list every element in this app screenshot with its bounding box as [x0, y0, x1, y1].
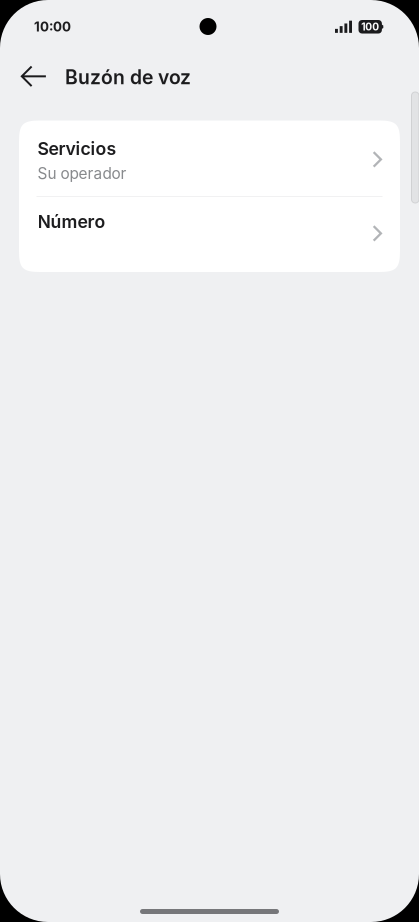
- staticText: Buzón de voz: [65, 65, 191, 89]
- button[interactable]: Número: [19, 197, 400, 272]
- button[interactable]: Back: [10, 52, 58, 100]
- button[interactable]: Servicios: [19, 120, 400, 196]
- staticText: Servicios: [37, 138, 116, 159]
- staticText: Número: [37, 211, 105, 232]
- staticText: 100: [361, 21, 379, 33]
- staticText: Su operador: [37, 164, 126, 183]
- staticText: 10:00: [34, 18, 71, 35]
